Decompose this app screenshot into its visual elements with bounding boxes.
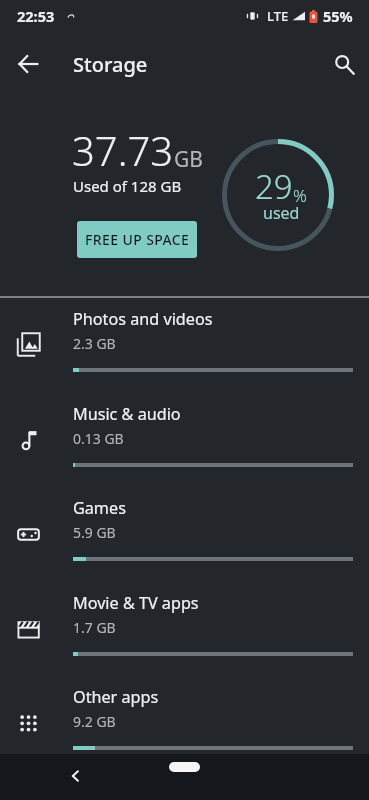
- staticText: 37.73: [72, 123, 174, 177]
- staticText: used: [263, 202, 300, 224]
- button[interactable]: Other apps: [0, 677, 369, 771]
- staticText: Games: [73, 497, 126, 519]
- staticText: LTE: [267, 7, 289, 25]
- staticText: Used of 128 GB: [73, 176, 182, 196]
- button[interactable]: Games: [0, 488, 369, 582]
- staticText: 1.7 GB: [73, 618, 116, 637]
- button[interactable]: FREE UP SPACE: [77, 221, 197, 258]
- staticText: 0.13 GB: [73, 429, 124, 448]
- button[interactable]: Home: [169, 762, 200, 772]
- button[interactable]: Back: [57, 757, 95, 795]
- staticText: FREE UP SPACE: [85, 230, 190, 249]
- staticText: 9.2 GB: [73, 712, 116, 731]
- staticText: 29: [255, 164, 293, 209]
- staticText: Storage: [73, 51, 148, 78]
- staticText: 2.3 GB: [73, 334, 116, 353]
- staticText: 5.9 GB: [73, 523, 116, 542]
- staticText: 22:53: [17, 6, 55, 26]
- staticText: %: [293, 184, 307, 207]
- button[interactable]: Movie & TV apps: [0, 583, 369, 677]
- staticText: Photos and videos: [73, 308, 213, 330]
- staticText: Music & audio: [73, 403, 181, 425]
- button[interactable]: Music & audio: [0, 394, 369, 488]
- staticText: 55%: [323, 6, 353, 26]
- button[interactable]: Back: [6, 42, 50, 86]
- staticText: Other apps: [73, 686, 159, 708]
- button[interactable]: Photos and videos: [0, 299, 369, 393]
- staticText: GB: [174, 145, 203, 174]
- staticText: Movie & TV apps: [73, 592, 199, 614]
- button[interactable]: Search: [322, 42, 366, 86]
